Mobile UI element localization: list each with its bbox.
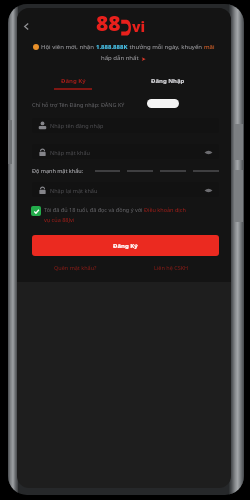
staticText: mãi [204, 43, 215, 51]
staticText: 1.888.888K [96, 43, 128, 51]
staticText: Nhập mật khẩu [50, 149, 90, 156]
button[interactable]: Show password [203, 185, 213, 195]
staticText: Độ mạnh mật khẩu: [32, 167, 84, 174]
button[interactable]: Nhập mật khẩu [32, 144, 219, 159]
staticText: ➤ [141, 55, 147, 62]
staticText: Điều khoản dịch [144, 206, 186, 213]
staticText: Đăng Ký [113, 242, 138, 250]
staticText: hấp dẫn nhất [101, 54, 141, 62]
staticText: Nhập lại mật khẩu [50, 187, 98, 194]
button[interactable]: Nhập lại mật khẩu [32, 182, 219, 197]
button[interactable]: Đăng Nhập [138, 75, 198, 97]
staticText: thưởng mỗi ngày, khuyến [128, 43, 204, 51]
staticText: Liên hệ CSKH [154, 264, 189, 271]
button[interactable]: Show password [203, 147, 213, 157]
staticText: Đăng Nhập [151, 77, 185, 85]
button[interactable]: Tôi đã đủ 18 tuổi, đã đọc và đồng ý với [31, 206, 219, 223]
button[interactable]: Quên mật khẩu? [54, 264, 97, 271]
button[interactable] [147, 99, 179, 108]
staticText: Tôi đã đủ 18 tuổi, đã đọc và đồng ý với [44, 206, 144, 213]
button[interactable]: Nhập tên đăng nhập [32, 118, 219, 133]
staticText: vi [132, 17, 146, 36]
staticText: Đăng Ký [61, 77, 86, 85]
button[interactable]: Đăng Ký [32, 235, 219, 256]
staticText: Chỉ hỗ trợ Tên Đăng nhập: ĐĂNG KÝ [32, 101, 125, 108]
button[interactable]: Back [19, 19, 34, 34]
button[interactable]: Liên hệ CSKH [154, 264, 189, 271]
staticText: Hội viên mới, nhận [41, 43, 96, 51]
button[interactable]: Đăng Ký [43, 75, 103, 97]
staticText: Nhập tên đăng nhập [50, 122, 104, 129]
staticText: Quên mật khẩu? [54, 264, 97, 271]
staticText: 88 [96, 9, 121, 38]
staticText: vụ của 88Jvi [44, 216, 75, 223]
